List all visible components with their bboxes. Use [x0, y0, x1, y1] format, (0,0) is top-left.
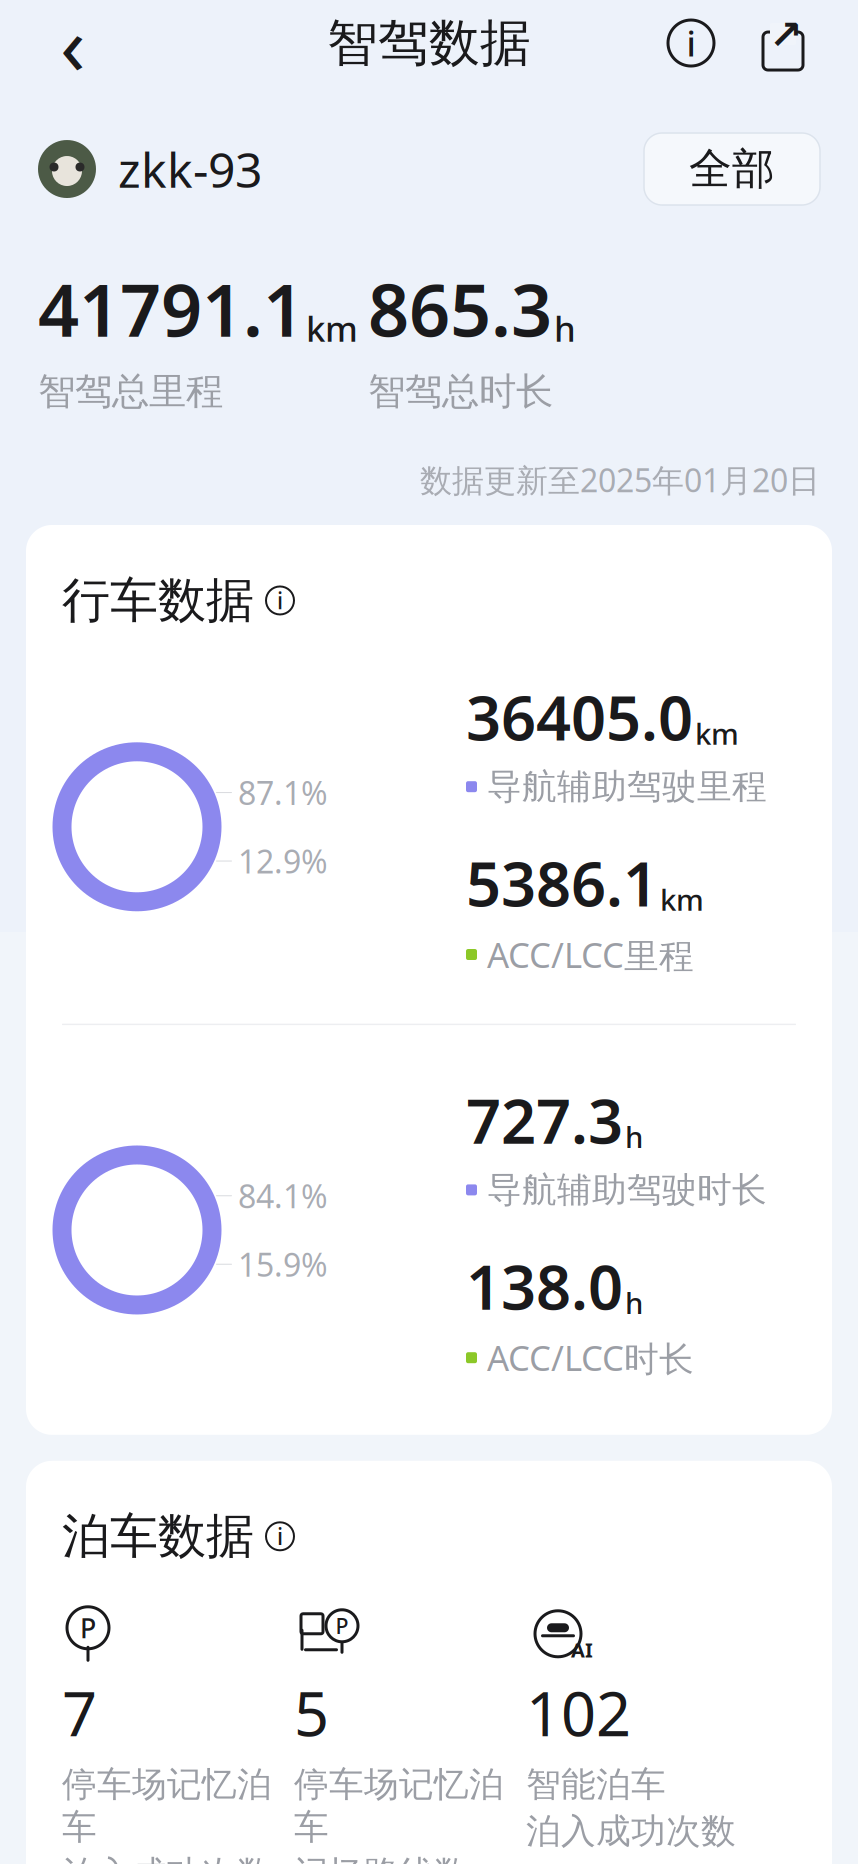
staticText: 36405.0 [466, 676, 693, 757]
staticText: ACC/LCC里程 [487, 931, 694, 978]
staticText: 行车数据 [62, 571, 254, 630]
staticText: km [306, 305, 358, 351]
staticText: 138.0 [466, 1245, 623, 1327]
staticText: ↗ [769, 12, 803, 58]
staticText: 5386.1 [466, 842, 658, 923]
staticText: 5 [294, 1672, 329, 1753]
staticText: km [660, 880, 704, 919]
staticText: 12.9% [238, 840, 328, 882]
staticText: 7 [62, 1672, 97, 1753]
staticText: 727.3 [466, 1079, 623, 1160]
staticText: 84.1% [238, 1174, 328, 1217]
staticText: 导航辅助驾驶里程 [487, 765, 767, 808]
staticText: 泊入成功次数 [62, 1852, 272, 1864]
staticText: 智驾数据 [327, 12, 531, 74]
button[interactable]: About 行车数据 [266, 585, 294, 615]
button[interactable]: About 泊车数据 [266, 1521, 294, 1551]
button[interactable]: Profile zkk-93 [38, 137, 262, 201]
staticText: i [277, 1521, 283, 1551]
staticText: AI [571, 1636, 593, 1663]
staticText: 41791.1 [38, 261, 304, 357]
staticText: 停车场记忆泊车 [62, 1763, 272, 1848]
staticText: 智能泊车 [526, 1763, 666, 1806]
staticText: h [625, 1117, 643, 1156]
staticText: zkk-93 [118, 137, 262, 201]
staticText: P [335, 1612, 348, 1640]
button[interactable]: Share [754, 14, 812, 72]
staticText: 全部 [689, 143, 775, 195]
staticText: ‹ [60, 0, 86, 98]
staticText: 15.9% [238, 1243, 328, 1285]
staticText: 87.1% [238, 771, 328, 814]
button[interactable]: 全部 [644, 133, 820, 205]
staticText: 泊车数据 [62, 1507, 254, 1566]
staticText: 泊入成功次数 [526, 1810, 736, 1852]
staticText: i [686, 20, 695, 66]
staticText: h [625, 1283, 643, 1322]
staticText: km [695, 714, 739, 753]
button[interactable]: Information [662, 14, 720, 72]
staticText: 865.3 [368, 261, 552, 357]
staticText: i [277, 585, 283, 615]
staticText: 102 [526, 1672, 631, 1753]
staticText: 智驾总里程 [38, 369, 223, 414]
staticText: 停车场记忆泊车 [294, 1763, 504, 1848]
staticText: P [80, 1610, 96, 1645]
staticText: 数据更新至2025年01月20日 [420, 458, 820, 501]
staticText: 导航辅助驾驶时长 [487, 1169, 767, 1211]
staticText: h [554, 305, 576, 351]
staticText: 智驾总时长 [368, 369, 553, 414]
staticText: ACC/LCC时长 [487, 1335, 694, 1381]
staticText: 记忆路线数 [294, 1852, 469, 1864]
button[interactable]: Back [40, 10, 106, 76]
